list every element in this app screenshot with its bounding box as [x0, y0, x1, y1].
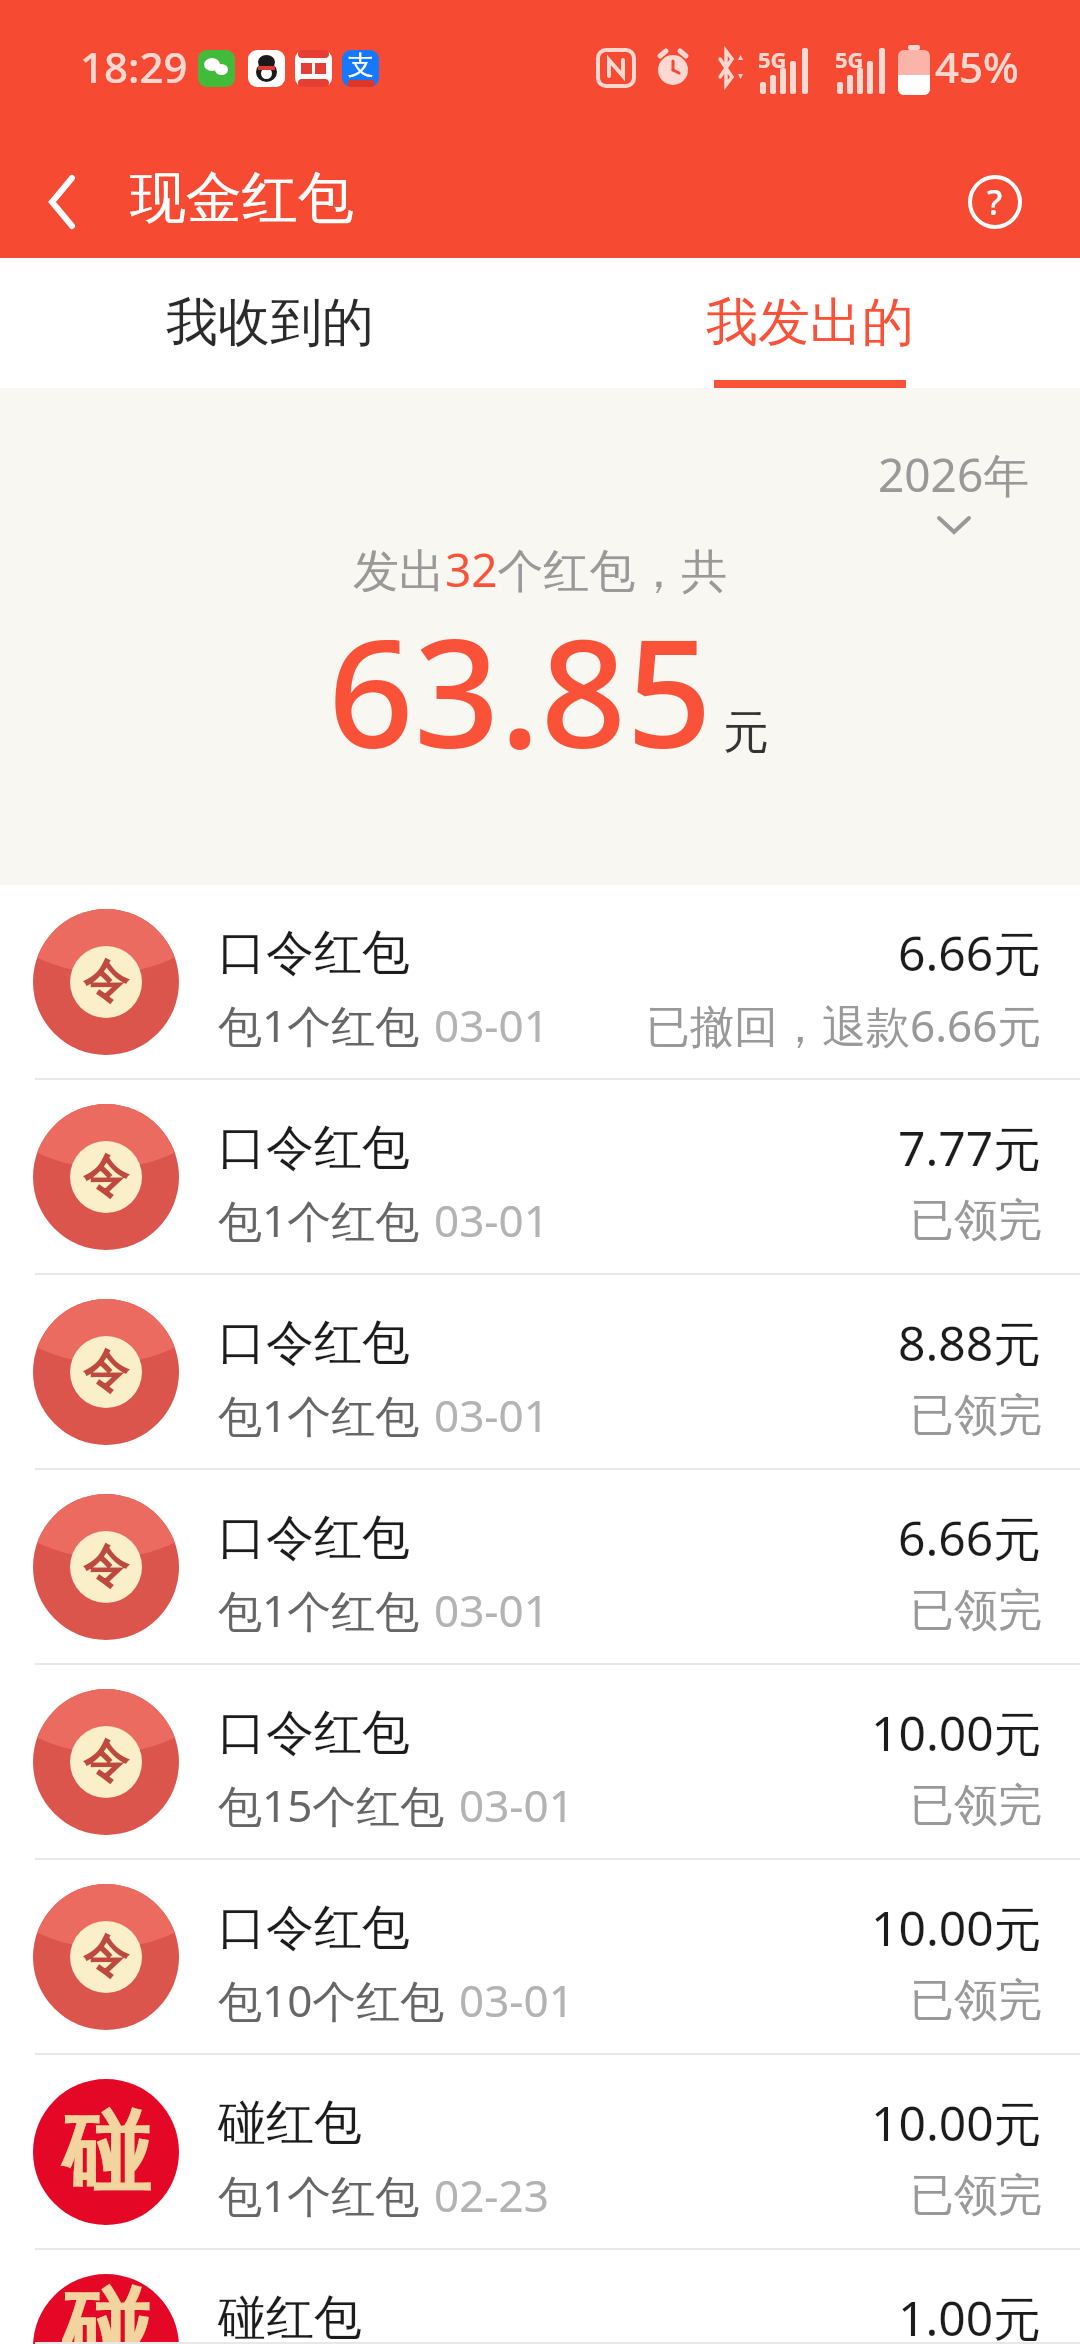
staticText: 口令红包 — [218, 923, 410, 983]
staticText: 包1个红包 — [218, 995, 420, 1055]
staticText: 元 — [723, 704, 769, 762]
staticText: 包1个红包 — [218, 1385, 420, 1445]
button[interactable]: 令 — [0, 1470, 1080, 1665]
staticText: 我发出的 — [706, 290, 914, 356]
staticText: 口令红包 — [218, 1703, 410, 1763]
staticText: 已领完 — [910, 1193, 1042, 1248]
staticText: 5G — [835, 44, 864, 74]
staticText: 口令红包 — [218, 1898, 410, 1958]
staticText: 6.66元 — [898, 1505, 1042, 1571]
staticText: 我收到的 — [166, 290, 374, 356]
staticText: 2026年 — [878, 443, 1030, 506]
staticText: 18:29 — [80, 38, 188, 95]
button[interactable]: 令 — [0, 1860, 1080, 2055]
staticText: 支 — [348, 50, 374, 82]
staticText: 令 — [83, 953, 129, 1011]
button[interactable]: 我发出的 — [540, 258, 1080, 388]
button[interactable]: 令 — [0, 885, 1080, 1080]
staticText: 02-23 — [434, 2165, 549, 2225]
staticText: 63.85 — [328, 588, 713, 792]
staticText: 已领完 — [910, 1388, 1042, 1443]
staticText: 6.66元 — [898, 920, 1042, 986]
staticText: 10.00元 — [871, 1895, 1042, 1961]
button[interactable]: 令 — [0, 1080, 1080, 1275]
staticText: 包15个红包 — [218, 1775, 445, 1835]
staticText: 令 — [83, 1733, 129, 1791]
button[interactable]: 令 — [0, 1275, 1080, 1470]
staticText: 现金红包 — [130, 163, 354, 234]
staticText: 包1个红包 — [218, 1580, 420, 1640]
staticText: 10.00元 — [871, 1700, 1042, 1766]
staticText: 03-01 — [459, 1775, 574, 1835]
staticText: 包1个红包 — [218, 1190, 420, 1250]
staticText: 03-01 — [434, 1190, 549, 1250]
staticText: 令 — [83, 1928, 129, 1986]
staticText: 03-01 — [434, 995, 549, 1055]
button[interactable]: 碰 — [0, 2250, 1080, 2344]
staticText: 已撤回，退款6.66元 — [646, 995, 1042, 1055]
staticText: 5G — [758, 44, 787, 74]
button[interactable] — [30, 170, 94, 234]
staticText: 03-01 — [434, 1580, 549, 1640]
staticText: 已领完 — [910, 2168, 1042, 2223]
button[interactable]: 我收到的 — [0, 258, 540, 388]
staticText: 碰 — [62, 2097, 150, 2208]
button[interactable]: ? — [967, 174, 1023, 230]
staticText: 令 — [83, 1538, 129, 1596]
staticText: 已领完 — [910, 1583, 1042, 1638]
staticText: 已领完 — [910, 1778, 1042, 1833]
staticText: 口令红包 — [218, 1508, 410, 1568]
staticText: 已领完 — [910, 1973, 1042, 2028]
staticText: 令 — [83, 1148, 129, 1206]
button[interactable]: 令 — [0, 1665, 1080, 1860]
staticText: 碰 — [62, 2274, 150, 2344]
staticText: 10.00元 — [871, 2090, 1042, 2156]
staticText: 口令红包 — [218, 1313, 410, 1373]
button[interactable]: 2026年 — [878, 443, 1030, 536]
staticText: 45% — [935, 38, 1019, 95]
staticText: 碰红包 — [218, 2093, 362, 2153]
staticText: 令 — [83, 1343, 129, 1401]
staticText: 03-01 — [459, 1970, 574, 2030]
staticText: 7.77元 — [898, 1115, 1042, 1181]
staticText: 包1个红包 — [218, 2165, 420, 2225]
staticText: 8.88元 — [898, 1310, 1042, 1376]
staticText: 发出32个红包，共 — [353, 538, 728, 601]
staticText: 03-01 — [434, 1385, 549, 1445]
staticText: 包10个红包 — [218, 1970, 445, 2030]
staticText: 口令红包 — [218, 1118, 410, 1178]
staticText: 碰红包 — [218, 2288, 362, 2344]
staticText: ? — [987, 179, 1003, 225]
button[interactable]: 碰 — [0, 2055, 1080, 2250]
staticText: 1.00元 — [898, 2285, 1042, 2344]
